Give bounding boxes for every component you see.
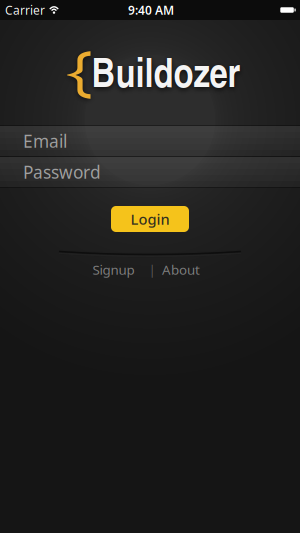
staticText: | (148, 261, 155, 278)
staticText: About (162, 261, 200, 278)
button[interactable]: Password (0, 157, 300, 187)
button[interactable]: Email (0, 126, 300, 156)
button[interactable]: Signup (86, 261, 140, 278)
staticText: 9:40 AM (128, 2, 174, 18)
button[interactable]: Login (111, 206, 189, 232)
staticText: Buildozer (91, 43, 240, 99)
staticText: Login (130, 209, 169, 229)
button[interactable]: About (156, 261, 206, 278)
staticText: Password (23, 160, 101, 183)
staticText: Email (23, 129, 67, 152)
staticText: Carrier (5, 2, 45, 18)
staticText: Signup (92, 261, 134, 278)
